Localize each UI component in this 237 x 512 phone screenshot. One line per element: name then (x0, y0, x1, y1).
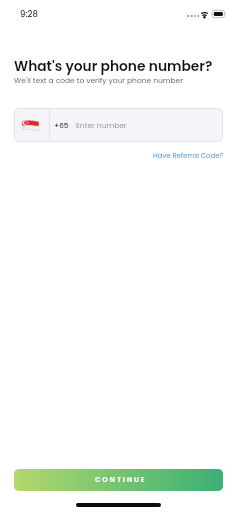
other: Wi-Fi (200, 10, 209, 18)
staticText: +65 (54, 120, 69, 130)
staticText: Enter number (76, 120, 127, 130)
staticText: We'll text a code to verify your phone n… (14, 75, 184, 85)
staticText: CONTINUE (95, 475, 147, 485)
staticText: 9:28 (20, 8, 38, 20)
button[interactable]: +65 (14, 108, 223, 142)
button[interactable]: Have Referral Code? (148, 147, 229, 165)
staticText: What's your phone number? (14, 57, 213, 76)
button[interactable]: CONTINUE (14, 469, 223, 491)
staticText: Have Referral Code? (153, 151, 224, 161)
